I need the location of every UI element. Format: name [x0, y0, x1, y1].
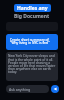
staticText: Big Document [14, 13, 50, 20]
button[interactable]: Ask anything [6, 85, 49, 93]
staticText: New York City never sleeps and that is t… [8, 54, 56, 74]
staticText: Create short summary of "Why living in N… [10, 37, 50, 45]
button[interactable]: Send [51, 85, 59, 93]
button[interactable]: New York City never sleeps and that is t… [6, 52, 58, 81]
button[interactable]: Create short summary of "Why living in N… [6, 34, 58, 50]
staticText: Ask anything [9, 87, 31, 92]
staticText: Handles any [17, 5, 48, 12]
